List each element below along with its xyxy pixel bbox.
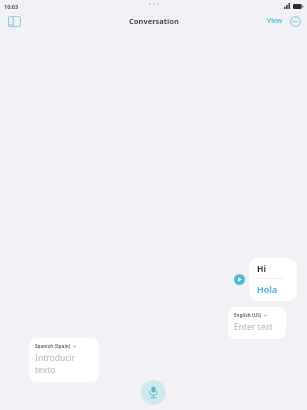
button[interactable]: Show sidebar bbox=[4, 11, 24, 31]
button[interactable]: View bbox=[265, 14, 285, 28]
staticText: Hola bbox=[257, 283, 278, 295]
staticText: View bbox=[267, 16, 283, 26]
staticText: Conversation bbox=[129, 16, 179, 26]
staticText: English (US) bbox=[234, 312, 262, 318]
button[interactable]: Play translation bbox=[234, 274, 245, 285]
button[interactable]: Spanish (Spain) bbox=[29, 338, 99, 382]
button[interactable]: Hi bbox=[249, 258, 297, 301]
staticText: Enter text bbox=[234, 321, 273, 333]
staticText: Hi bbox=[257, 263, 267, 275]
staticText: 10:03 bbox=[4, 3, 19, 10]
button[interactable]: More options bbox=[286, 12, 304, 30]
button[interactable]: English (US) bbox=[228, 307, 286, 339]
staticText: Spanish (Spain) bbox=[35, 343, 71, 349]
button[interactable]: Start speaking bbox=[141, 380, 166, 405]
staticText: Introducir texto bbox=[35, 352, 94, 376]
